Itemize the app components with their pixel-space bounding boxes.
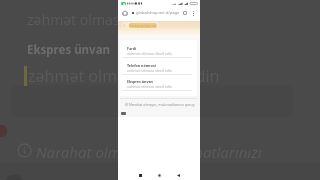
staticText: Ekspres ünvan [127, 79, 153, 84]
button[interactable]: Home [153, 171, 165, 180]
button[interactable]: Recent apps [134, 171, 146, 180]
staticText: zəhmət olmasa daxil edin [127, 51, 173, 56]
staticText: Narahat olmayın, məlumatlarınızı [36, 142, 262, 162]
staticText: Telefon nömrəsi [127, 63, 156, 68]
button[interactable]: Tabs [183, 11, 187, 15]
staticText: zəhmət olmasa daxil edin [127, 68, 173, 73]
button[interactable]: Home [122, 10, 128, 16]
button[interactable]: Ödəniş üsulunu seç [122, 22, 159, 29]
staticText: globalshop.me.it/page [136, 10, 180, 16]
staticText: Fərdi [127, 46, 136, 51]
staticText: Ekspres ünvan [27, 42, 111, 58]
button[interactable]: Back [172, 171, 184, 180]
staticText: Narahat olmayın, məlumatlarınızı qoruy [129, 102, 195, 107]
staticText: Ödəniş üsulunu seç [129, 24, 157, 28]
staticText: zəhmət olmasa daxil edin [28, 65, 220, 87]
button[interactable]: More options [193, 11, 194, 16]
staticText: zəhmət olmasa daxil edin [127, 84, 173, 89]
staticText: zəhmət olmasa daxil edin [27, 10, 195, 29]
